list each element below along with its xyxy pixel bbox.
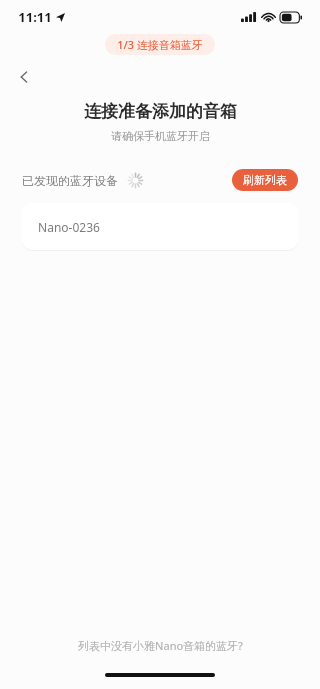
staticText: 11:11	[18, 8, 52, 26]
staticText: 列表中没有小雅Nano音箱的蓝牙?	[78, 638, 243, 653]
staticText: 请确保手机蓝牙开启	[111, 129, 210, 143]
button[interactable]: 刷新列表	[232, 169, 298, 191]
staticText: 已发现的蓝牙设备	[22, 173, 118, 188]
staticText: 连接准备添加的音箱	[84, 101, 237, 122]
button[interactable]: Nano-0236	[22, 203, 298, 250]
button[interactable]: Back	[8, 61, 40, 93]
staticText: 刷新列表	[243, 173, 287, 187]
staticText: Nano-0236	[38, 219, 100, 235]
button[interactable]: 列表中没有小雅Nano音箱的蓝牙?	[68, 634, 253, 657]
button[interactable]: 1/3 连接音箱蓝牙	[105, 34, 215, 55]
staticText: 1/3 连接音箱蓝牙	[117, 37, 203, 52]
